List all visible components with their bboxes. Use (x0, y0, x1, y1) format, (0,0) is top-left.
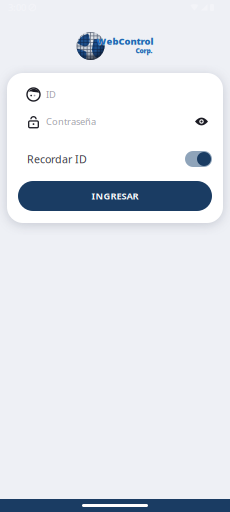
button[interactable]: INGRESAR (18, 181, 212, 211)
staticText: Contraseña (46, 115, 96, 128)
staticText: Recordar ID (27, 152, 87, 166)
button[interactable]: ID (18, 88, 212, 101)
staticText: WebControl (97, 35, 154, 48)
staticText: Corp. (136, 47, 153, 56)
staticText: ID (46, 88, 56, 101)
staticText: Corp. (135, 46, 152, 55)
button[interactable]: Recordar ID (18, 151, 212, 167)
staticText: WebControl (96, 35, 153, 47)
staticText: INGRESAR (91, 190, 138, 202)
button[interactable]: Contraseña (18, 115, 212, 128)
